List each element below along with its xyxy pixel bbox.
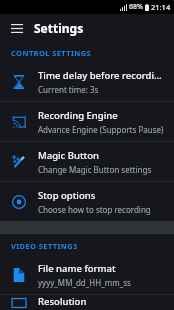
staticText: Choose how to stop recording [38,204,151,215]
staticText: yyyy_MM_dd_HH_mm_ss [38,277,131,288]
staticText: Settings [34,20,84,36]
staticText: Magic Button [38,149,99,162]
staticText: File name format [38,262,116,275]
button[interactable]: Time delay before recording [0,62,174,101]
button[interactable]: Open navigation drawer [6,17,28,39]
staticText: Current time: 3s [38,84,99,95]
staticText: Recording Engine [38,109,118,122]
staticText: Change Magic Button settings [38,164,152,175]
staticText: Resolution [38,295,87,308]
button[interactable]: Stop options [0,182,174,221]
button[interactable]: Resolution [0,295,174,310]
button[interactable]: Recording Engine [0,102,174,141]
staticText: VIDEO SETTINGS [11,241,78,251]
button[interactable]: File name format [0,255,174,294]
staticText: Time delay before recording [38,69,164,82]
staticText: CONTROL SETTINGS [11,48,92,58]
staticText: 68% [129,2,143,12]
button[interactable]: Magic Button [0,142,174,181]
staticText: Stop options [38,189,96,202]
staticText: 21:14 [151,2,171,12]
staticText: Advance Engine (Supports Pause) [38,124,164,135]
